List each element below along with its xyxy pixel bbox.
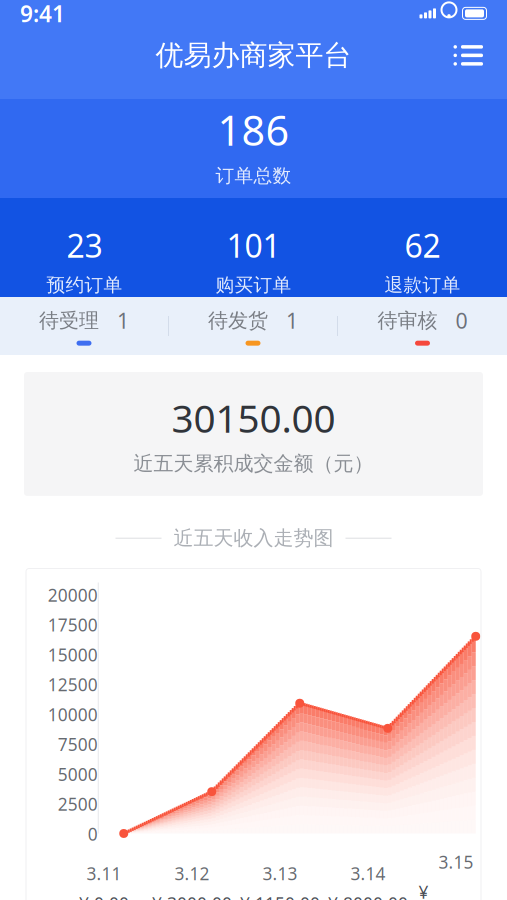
staticText: 5000 [58, 763, 98, 786]
staticText: 优易办商家平台 [155, 38, 351, 73]
staticText: 待审核 [377, 308, 437, 333]
staticText: 62 [404, 224, 440, 267]
staticText: 购买订单 [215, 274, 291, 297]
staticText: 20000 [48, 583, 98, 606]
staticText: 3.13 [262, 862, 297, 885]
button[interactable]: 23 [0, 220, 169, 301]
staticText: 30150.00 [171, 392, 335, 443]
staticText: 待发货 [208, 308, 268, 333]
button[interactable]: 待审核 [338, 297, 507, 355]
staticText: 17500 [48, 613, 98, 636]
staticText: 1 [117, 306, 129, 335]
staticText: 9:41 [20, 0, 65, 28]
button[interactable]: 待发货 [169, 297, 338, 355]
staticText: 0 [455, 306, 467, 335]
button[interactable]: 待受理 [0, 297, 169, 355]
staticText: ¥ 8000.00 [328, 892, 408, 900]
staticText: 3.14 [350, 862, 385, 885]
staticText: 待受理 [39, 308, 99, 333]
staticText: 7500 [58, 733, 98, 756]
staticText: 退款订单 [384, 274, 460, 297]
button[interactable]: 101 [169, 220, 338, 301]
staticText: ¥ 0.00 [79, 892, 129, 900]
staticText: 2500 [58, 793, 98, 816]
staticText: 10000 [48, 703, 98, 726]
staticText: 12500 [48, 673, 98, 696]
staticText: ¥ 18000.00 [418, 880, 493, 900]
staticText: 预约订单 [46, 274, 122, 297]
staticText: 186 [217, 102, 289, 157]
staticText: 3.15 [438, 850, 473, 873]
staticText: 3.11 [86, 862, 121, 885]
staticText: 3.12 [174, 862, 209, 885]
staticText: ¥ 3000.00 [152, 892, 232, 900]
staticText: 0 [88, 822, 98, 845]
staticText: 101 [226, 224, 280, 267]
staticText: 近五天收入走势图 [173, 526, 333, 550]
staticText: 1 [286, 306, 298, 335]
staticText: 23 [66, 224, 102, 267]
button[interactable]: 62 [338, 220, 507, 301]
staticText: 15000 [48, 643, 98, 666]
staticText: 近五天累积成交金额（元） [133, 451, 373, 476]
button[interactable]: Menu [443, 35, 493, 76]
staticText: 订单总数 [215, 164, 291, 187]
staticText: ¥ 1150.00 [240, 892, 320, 900]
